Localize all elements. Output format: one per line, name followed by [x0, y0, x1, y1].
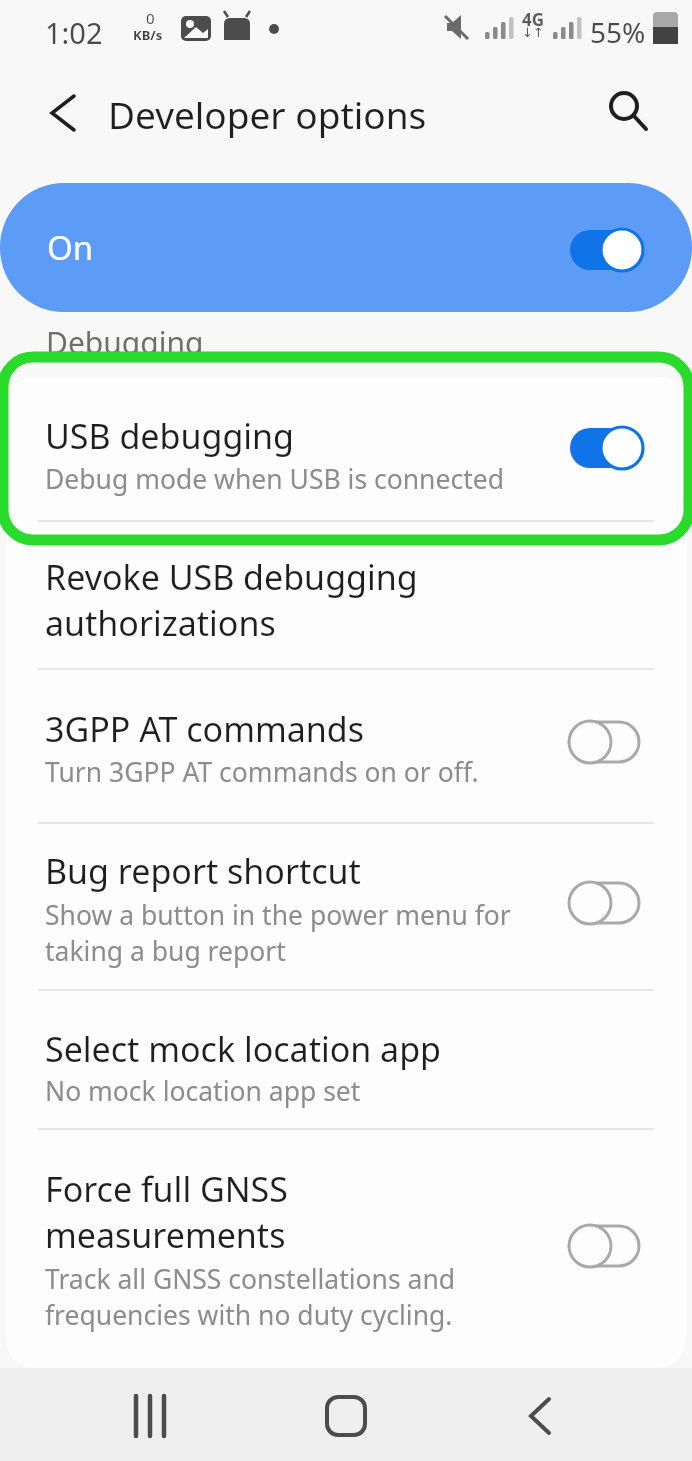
- staticText: 4G: [522, 8, 545, 31]
- staticText: Show a button in the power menu for: [45, 897, 511, 933]
- staticText: measurements: [45, 1212, 286, 1258]
- staticText: Revoke USB debugging: [45, 554, 418, 600]
- button[interactable]: USB debugging: [45, 413, 294, 459]
- button[interactable]: [112, 1385, 188, 1447]
- button[interactable]: [6, 1128, 686, 1368]
- staticText: KB/s: [133, 26, 163, 44]
- button[interactable]: [570, 427, 644, 469]
- button[interactable]: [502, 1385, 578, 1447]
- staticText: USB debugging: [45, 413, 294, 459]
- button[interactable]: [30, 85, 86, 141]
- button[interactable]: [568, 721, 642, 763]
- staticText: No mock location app set: [45, 1073, 361, 1109]
- button[interactable]: Force full GNSS: [45, 1166, 288, 1258]
- staticText: Select mock location app: [45, 1026, 441, 1072]
- staticText: frequencies with no duty cycling.: [45, 1297, 453, 1333]
- staticText: 3GPP AT commands: [45, 706, 365, 752]
- button[interactable]: [6, 822, 686, 989]
- button[interactable]: [568, 882, 642, 924]
- button[interactable]: 3GPP AT commands: [45, 706, 365, 752]
- button[interactable]: On: [0, 183, 692, 312]
- button[interactable]: [6, 989, 686, 1128]
- button[interactable]: Select mock location app: [45, 1026, 441, 1072]
- staticText: authorizations: [45, 600, 276, 646]
- staticText: Debug mode when USB is connected: [45, 461, 504, 497]
- staticText: taking a bug report: [45, 933, 286, 969]
- button[interactable]: [6, 668, 686, 822]
- staticText: 1:02: [45, 13, 103, 52]
- staticText: On: [47, 225, 94, 270]
- staticText: ↓↑: [522, 25, 544, 40]
- staticText: Bug report shortcut: [45, 848, 361, 894]
- button[interactable]: [600, 85, 656, 141]
- button[interactable]: Bug report shortcut: [45, 848, 361, 894]
- staticText: Track all GNSS constellations and: [45, 1261, 456, 1297]
- button[interactable]: [308, 1385, 384, 1447]
- staticText: Turn 3GPP AT commands on or off.: [45, 754, 479, 790]
- staticText: Developer options: [108, 89, 427, 139]
- button[interactable]: [6, 377, 686, 520]
- button[interactable]: [570, 229, 644, 271]
- staticText: Debugging: [46, 322, 204, 363]
- staticText: 55%: [590, 13, 646, 51]
- button[interactable]: Revoke USB debugging: [45, 554, 418, 646]
- button[interactable]: [568, 1225, 642, 1267]
- staticText: Force full GNSS: [45, 1166, 288, 1212]
- button[interactable]: [6, 520, 686, 668]
- staticText: 0: [146, 8, 155, 28]
